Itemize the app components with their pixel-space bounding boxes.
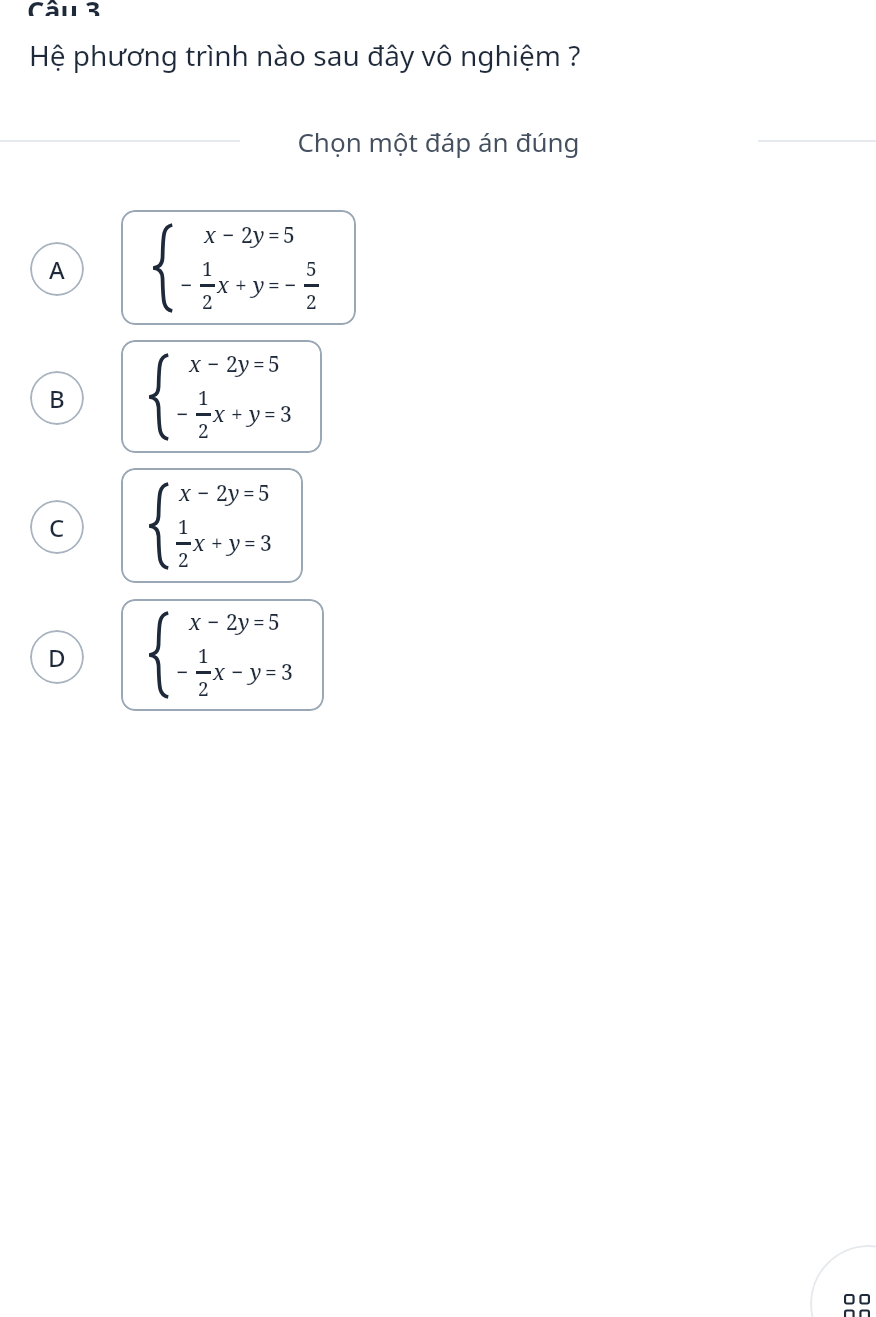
button[interactable]: A	[30, 242, 84, 296]
staticText: x	[213, 658, 225, 687]
staticText: =	[253, 350, 265, 379]
staticText: =	[253, 608, 265, 637]
staticText: 5	[258, 479, 270, 508]
staticText: =	[243, 479, 255, 508]
staticText: 1	[178, 514, 189, 540]
staticText: Hệ phương trình nào sau đây vô nghiệm ?	[29, 36, 581, 74]
staticText: B	[49, 382, 65, 415]
staticText: y	[249, 400, 261, 429]
staticText: −	[176, 658, 189, 687]
staticText: x	[189, 350, 201, 379]
staticText: 2	[198, 676, 209, 702]
staticText: x	[204, 221, 216, 250]
staticText: −	[222, 221, 235, 250]
staticText: y	[238, 608, 250, 637]
staticText: −	[176, 400, 189, 429]
staticText: y	[253, 271, 265, 300]
staticText: 2	[226, 350, 238, 379]
staticText: =	[244, 529, 256, 558]
button[interactable]: x	[121, 468, 303, 583]
button[interactable]: x	[121, 340, 322, 453]
staticText: 2	[198, 418, 209, 444]
staticText: 5	[268, 350, 280, 379]
staticText: =	[268, 271, 280, 300]
staticText: x	[189, 608, 201, 637]
staticText: −	[284, 271, 297, 300]
staticText: 3	[260, 529, 272, 558]
staticText: C	[49, 511, 65, 544]
staticText: −	[207, 608, 220, 637]
staticText: 3	[280, 400, 292, 429]
staticText: x	[193, 529, 205, 558]
staticText: x	[217, 271, 229, 300]
button[interactable]: Máy tính / bàn phím	[810, 1245, 876, 1317]
staticText: =	[265, 658, 277, 687]
staticText: +	[235, 271, 247, 300]
staticText: 2	[216, 479, 228, 508]
staticText: 3	[281, 658, 293, 687]
staticText: D	[48, 641, 66, 674]
button[interactable]: D	[30, 630, 84, 684]
staticText: 5	[283, 221, 295, 250]
staticText: y	[250, 658, 262, 687]
staticText: 5	[268, 608, 280, 637]
staticText: 2	[178, 547, 189, 573]
staticText: 2	[202, 289, 213, 315]
staticText: −	[231, 658, 244, 687]
staticText: 1	[202, 256, 213, 282]
staticText: 1	[198, 385, 209, 411]
staticText: =	[264, 400, 276, 429]
staticText: Câu 3	[27, 0, 101, 16]
staticText: −	[207, 350, 220, 379]
staticText: +	[211, 529, 223, 558]
staticText: y	[229, 529, 241, 558]
staticText: 5	[306, 256, 317, 282]
staticText: −	[197, 479, 210, 508]
button[interactable]: x	[121, 210, 356, 325]
staticText: x	[213, 400, 225, 429]
button[interactable]: C	[30, 500, 84, 554]
staticText: 2	[241, 221, 253, 250]
staticText: x	[179, 479, 191, 508]
staticText: y	[253, 221, 265, 250]
staticText: −	[180, 271, 193, 300]
button[interactable]: x	[121, 599, 324, 711]
button[interactable]: B	[30, 371, 84, 425]
staticText: 1	[198, 643, 209, 669]
staticText: =	[268, 221, 280, 250]
staticText: A	[49, 253, 65, 286]
staticText: y	[238, 350, 250, 379]
staticText: y	[228, 479, 240, 508]
staticText: 2	[306, 289, 317, 315]
staticText: Chọn một đáp án đúng	[297, 124, 580, 159]
staticText: +	[231, 400, 243, 429]
staticText: 2	[226, 608, 238, 637]
